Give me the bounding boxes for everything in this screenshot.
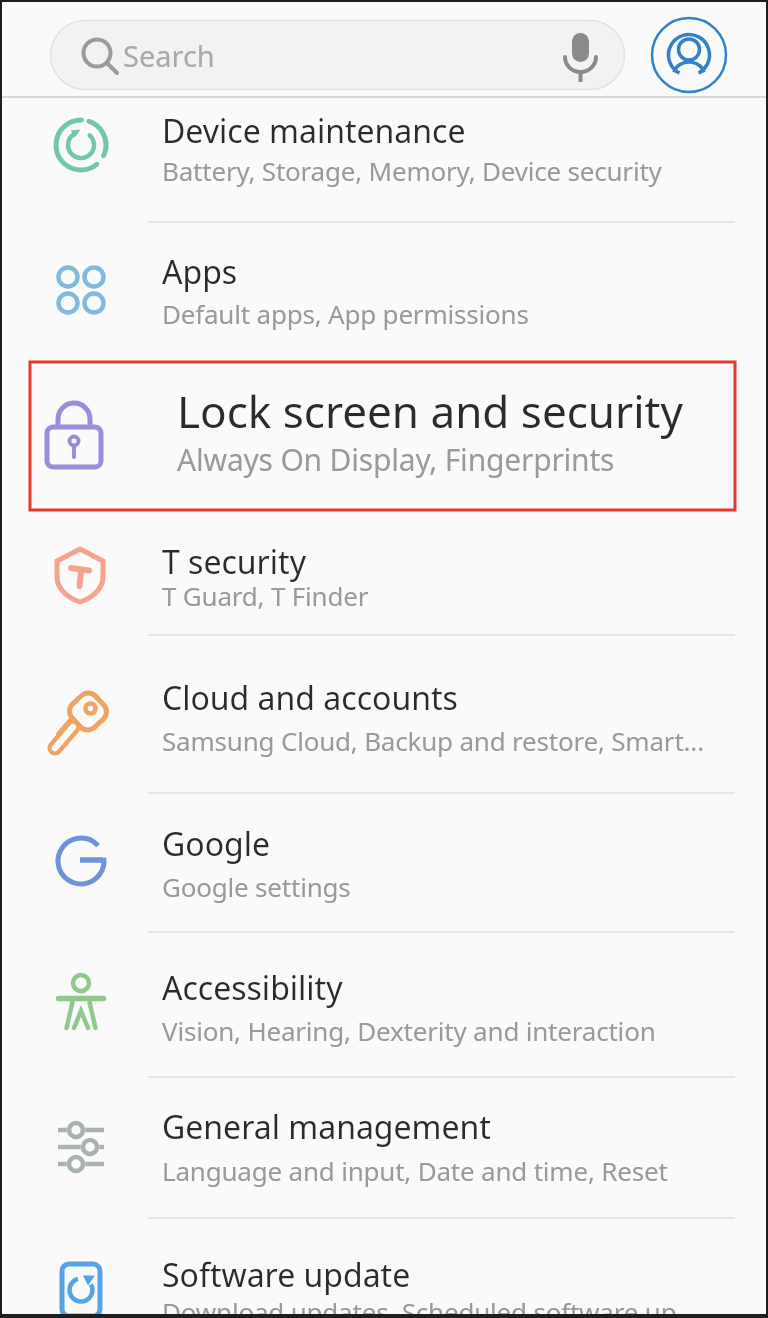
staticText: Cloud and accounts <box>162 676 458 720</box>
button[interactable]: Search <box>50 20 625 90</box>
button[interactable]: Apps <box>0 222 768 356</box>
staticText: T security <box>162 540 306 584</box>
staticText: Battery, Storage, Memory, Device securit… <box>162 153 662 188</box>
button[interactable]: General management <box>0 1077 768 1218</box>
staticText: Google settings <box>162 869 351 904</box>
button[interactable]: Software update <box>0 1218 768 1318</box>
staticText: Lock screen and security <box>177 381 683 441</box>
button[interactable]: Cloud and accounts <box>0 635 768 793</box>
staticText: Accessibility <box>162 966 343 1010</box>
staticText: Google <box>162 822 271 866</box>
button[interactable]: Accessibility <box>0 932 768 1077</box>
staticText: Language and input, Date and time, Reset <box>162 1153 668 1188</box>
button[interactable]: Lock screen and security <box>0 356 768 510</box>
button[interactable]: Google <box>0 793 768 932</box>
button[interactable]: Device maintenance <box>0 98 768 222</box>
staticText: Search <box>123 36 215 75</box>
staticText: General management <box>162 1105 491 1149</box>
staticText: Default apps, App permissions <box>162 296 529 331</box>
staticText: Samsung Cloud, Backup and restore, Smart… <box>162 723 704 758</box>
staticText: Download updates, Scheduled software up.… <box>162 1294 697 1318</box>
staticText: Always On Display, Fingerprints <box>177 439 615 480</box>
button[interactable]: T security <box>0 510 768 635</box>
staticText: Vision, Hearing, Dexterity and interacti… <box>162 1013 656 1048</box>
staticText: Apps <box>162 250 238 294</box>
staticText: Software update <box>162 1253 411 1297</box>
button[interactable] <box>651 17 727 93</box>
staticText: T Guard, T Finder <box>162 578 369 613</box>
staticText: Device maintenance <box>162 109 466 153</box>
